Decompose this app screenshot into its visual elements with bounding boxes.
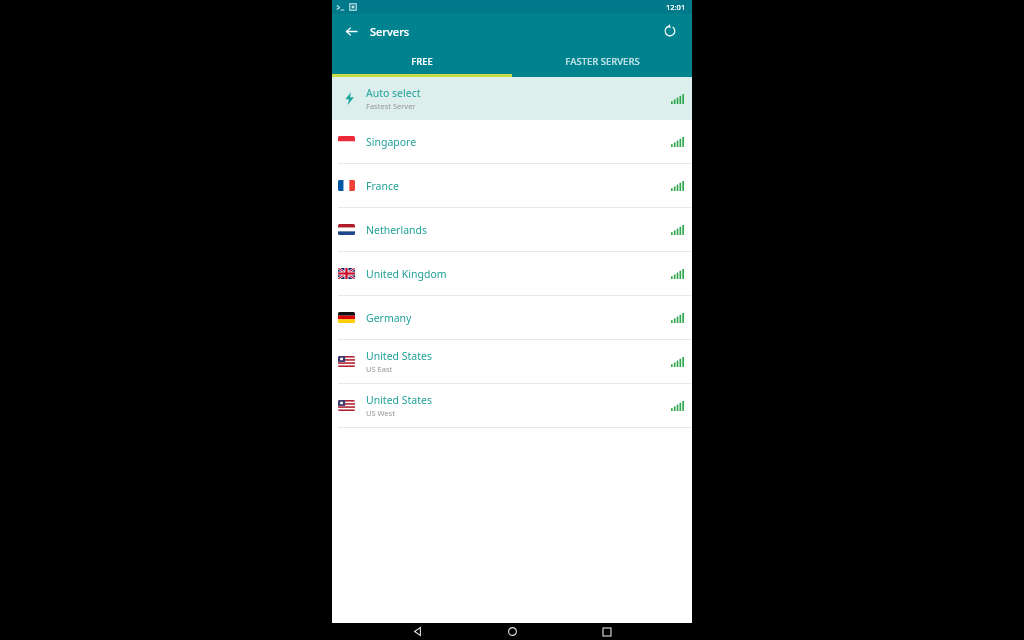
button[interactable]: Auto select <box>332 77 692 120</box>
button[interactable]: Netherlands <box>332 208 692 251</box>
button[interactable]: FREE <box>332 48 512 74</box>
staticText: Singapore <box>366 135 417 149</box>
button[interactable]: Home <box>502 623 522 640</box>
button[interactable]: United States <box>332 340 692 383</box>
staticText: Fastest Server <box>366 101 416 111</box>
staticText: 12:01 <box>666 2 686 12</box>
button[interactable]: United States <box>332 384 692 427</box>
staticText: Germany <box>366 311 412 325</box>
button[interactable]: Singapore <box>332 120 692 163</box>
staticText: Auto select <box>366 86 421 100</box>
button[interactable]: Refresh <box>658 19 682 43</box>
button[interactable]: Recents <box>597 623 617 640</box>
staticText: United Kingdom <box>366 267 447 281</box>
staticText: FASTER SERVERS <box>565 55 640 68</box>
button[interactable]: United Kingdom <box>332 252 692 295</box>
staticText: United States <box>366 393 432 407</box>
staticText: Netherlands <box>366 223 428 237</box>
staticText: US East <box>366 364 393 374</box>
button[interactable]: Back <box>340 20 362 42</box>
staticText: FREE <box>411 55 433 68</box>
button[interactable]: Germany <box>332 296 692 339</box>
button[interactable]: FASTER SERVERS <box>512 48 692 74</box>
button[interactable]: France <box>332 164 692 207</box>
button[interactable]: Back <box>407 623 427 640</box>
staticText: United States <box>366 349 432 363</box>
staticText: Servers <box>370 24 410 39</box>
staticText: France <box>366 179 399 193</box>
staticText: US West <box>366 408 395 418</box>
